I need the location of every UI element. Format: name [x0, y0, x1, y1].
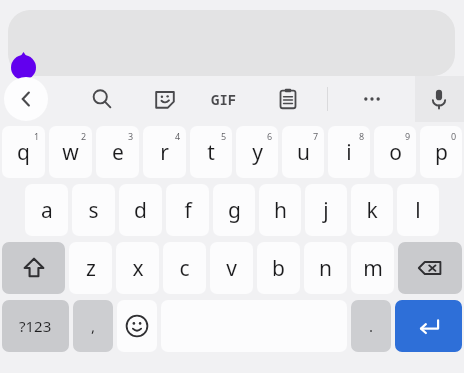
- button[interactable]: f: [166, 184, 209, 236]
- staticText: g: [228, 196, 241, 225]
- staticText: y: [252, 138, 263, 167]
- button[interactable]: GIF: [200, 76, 248, 122]
- button[interactable]: k: [351, 184, 393, 236]
- staticText: l: [415, 196, 421, 225]
- staticText: m: [363, 254, 383, 283]
- staticText: r: [160, 138, 169, 167]
- staticText: j: [323, 196, 329, 225]
- button[interactable]: v: [210, 242, 253, 294]
- staticText: p: [435, 138, 448, 167]
- staticText: 4: [175, 130, 181, 142]
- button[interactable]: m: [351, 242, 394, 294]
- button[interactable]: u: [282, 126, 324, 178]
- staticText: 6: [267, 130, 273, 142]
- button[interactable]: g: [213, 184, 255, 236]
- staticText: 7: [313, 130, 319, 142]
- button[interactable]: b: [257, 242, 300, 294]
- button[interactable]: Voice input: [415, 76, 463, 122]
- staticText: t: [207, 138, 215, 167]
- staticText: 5: [221, 130, 227, 142]
- button[interactable]: x: [116, 242, 159, 294]
- button[interactable]: Shift: [2, 242, 65, 294]
- button[interactable]: s: [72, 184, 115, 236]
- button[interactable]: j: [305, 184, 347, 236]
- staticText: v: [226, 254, 237, 283]
- staticText: k: [366, 196, 378, 225]
- staticText: 8: [359, 130, 365, 142]
- staticText: f: [184, 196, 192, 225]
- staticText: b: [272, 254, 285, 283]
- button[interactable]: p: [420, 126, 462, 178]
- staticText: ,: [91, 316, 96, 336]
- button[interactable]: o: [374, 126, 416, 178]
- button[interactable]: ,: [73, 300, 113, 352]
- button[interactable]: w: [49, 126, 92, 178]
- staticText: 1: [34, 130, 40, 142]
- staticText: s: [88, 196, 99, 225]
- button[interactable]: c: [163, 242, 206, 294]
- staticText: e: [112, 138, 124, 167]
- button[interactable]: Clipboard: [264, 76, 312, 122]
- button[interactable]: n: [304, 242, 347, 294]
- button[interactable]: .: [351, 300, 391, 352]
- button[interactable]: ?123: [2, 300, 69, 352]
- staticText: ?123: [19, 316, 52, 336]
- staticText: 2: [81, 130, 87, 142]
- button[interactable]: More options: [348, 76, 396, 122]
- button[interactable]: z: [69, 242, 112, 294]
- button[interactable]: [8, 10, 455, 76]
- button[interactable]: Emoji: [117, 300, 157, 352]
- staticText: z: [86, 254, 96, 283]
- staticText: c: [179, 254, 190, 283]
- staticText: GIF: [211, 90, 237, 109]
- staticText: h: [274, 196, 287, 225]
- button[interactable]: Backspace: [398, 242, 462, 294]
- staticText: n: [319, 254, 332, 283]
- button[interactable]: y: [236, 126, 278, 178]
- staticText: a: [41, 196, 53, 225]
- button[interactable]: Stickers: [141, 76, 189, 122]
- button[interactable]: h: [259, 184, 301, 236]
- button[interactable]: a: [25, 184, 68, 236]
- staticText: u: [297, 138, 310, 167]
- staticText: .: [369, 316, 374, 336]
- button[interactable]: Back: [4, 77, 48, 121]
- button[interactable]: t: [190, 126, 232, 178]
- button[interactable]: i: [328, 126, 370, 178]
- staticText: d: [134, 196, 147, 225]
- button[interactable]: q: [2, 126, 45, 178]
- button[interactable]: Enter: [395, 300, 462, 352]
- staticText: w: [62, 138, 79, 167]
- button[interactable]: r: [143, 126, 186, 178]
- staticText: x: [132, 254, 144, 283]
- button[interactable]: l: [397, 184, 439, 236]
- staticText: 3: [128, 130, 134, 142]
- staticText: 9: [405, 130, 411, 142]
- staticText: 0: [451, 130, 457, 142]
- button[interactable]: d: [119, 184, 162, 236]
- staticText: q: [17, 138, 30, 167]
- staticText: i: [346, 138, 352, 167]
- button[interactable]: Search: [78, 76, 126, 122]
- button[interactable]: e: [96, 126, 139, 178]
- staticText: o: [389, 138, 402, 167]
